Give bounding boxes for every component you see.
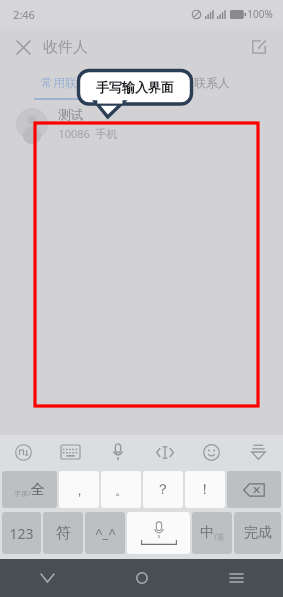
staticText: 100%: [247, 7, 273, 21]
button[interactable]: Compose: [243, 31, 275, 63]
staticText: 。: [115, 482, 128, 498]
button[interactable]: Recents: [189, 559, 283, 597]
staticText: 10086 手机: [58, 126, 118, 141]
staticText: 符: [56, 524, 71, 543]
staticText: 全: [31, 481, 45, 499]
button[interactable]: 。: [101, 471, 141, 508]
button[interactable]: Keyboard: [47, 435, 94, 469]
button[interactable]: Space: [127, 512, 190, 554]
staticText: 手写输入界面: [96, 79, 174, 95]
button[interactable]: Home: [95, 559, 189, 597]
staticText: 收件人: [43, 38, 88, 57]
button[interactable]: 联系人: [141, 66, 283, 98]
button[interactable]: Back: [0, 559, 95, 597]
button[interactable]: ？: [143, 471, 183, 508]
button[interactable]: 完成: [234, 512, 281, 554]
staticText: 半屏/: [14, 489, 31, 499]
staticText: 常用联系人: [41, 75, 101, 90]
staticText: ^_^: [95, 524, 116, 542]
button[interactable]: 符: [43, 512, 83, 554]
staticText: 联系人: [194, 75, 230, 90]
button[interactable]: Close: [8, 32, 38, 62]
staticText: 中: [200, 524, 214, 542]
button[interactable]: 测试: [0, 100, 283, 148]
button[interactable]: ^_^: [85, 512, 125, 554]
button[interactable]: ！: [185, 471, 225, 508]
staticText: ？: [156, 481, 170, 499]
staticText: 123: [9, 524, 34, 543]
staticText: ！: [198, 481, 212, 499]
button[interactable]: Voice input: [94, 435, 141, 469]
staticText: 测试: [58, 107, 83, 123]
staticText: /英: [214, 531, 225, 542]
button[interactable]: 常用联系人: [0, 66, 141, 98]
button[interactable]: Backspace: [227, 471, 281, 508]
button[interactable]: 123: [2, 512, 41, 554]
button[interactable]: 半屏/: [2, 471, 57, 508]
button[interactable]: Cursor: [141, 435, 188, 469]
staticText: ，: [73, 482, 86, 498]
button[interactable]: Emoji: [188, 435, 235, 469]
staticText: 完成: [244, 524, 272, 542]
button[interactable]: Hide keyboard: [235, 435, 282, 469]
button[interactable]: 中: [192, 512, 232, 554]
button[interactable]: ，: [59, 471, 99, 508]
button[interactable]: Input method: [0, 435, 47, 469]
staticText: 2:46: [13, 7, 35, 22]
